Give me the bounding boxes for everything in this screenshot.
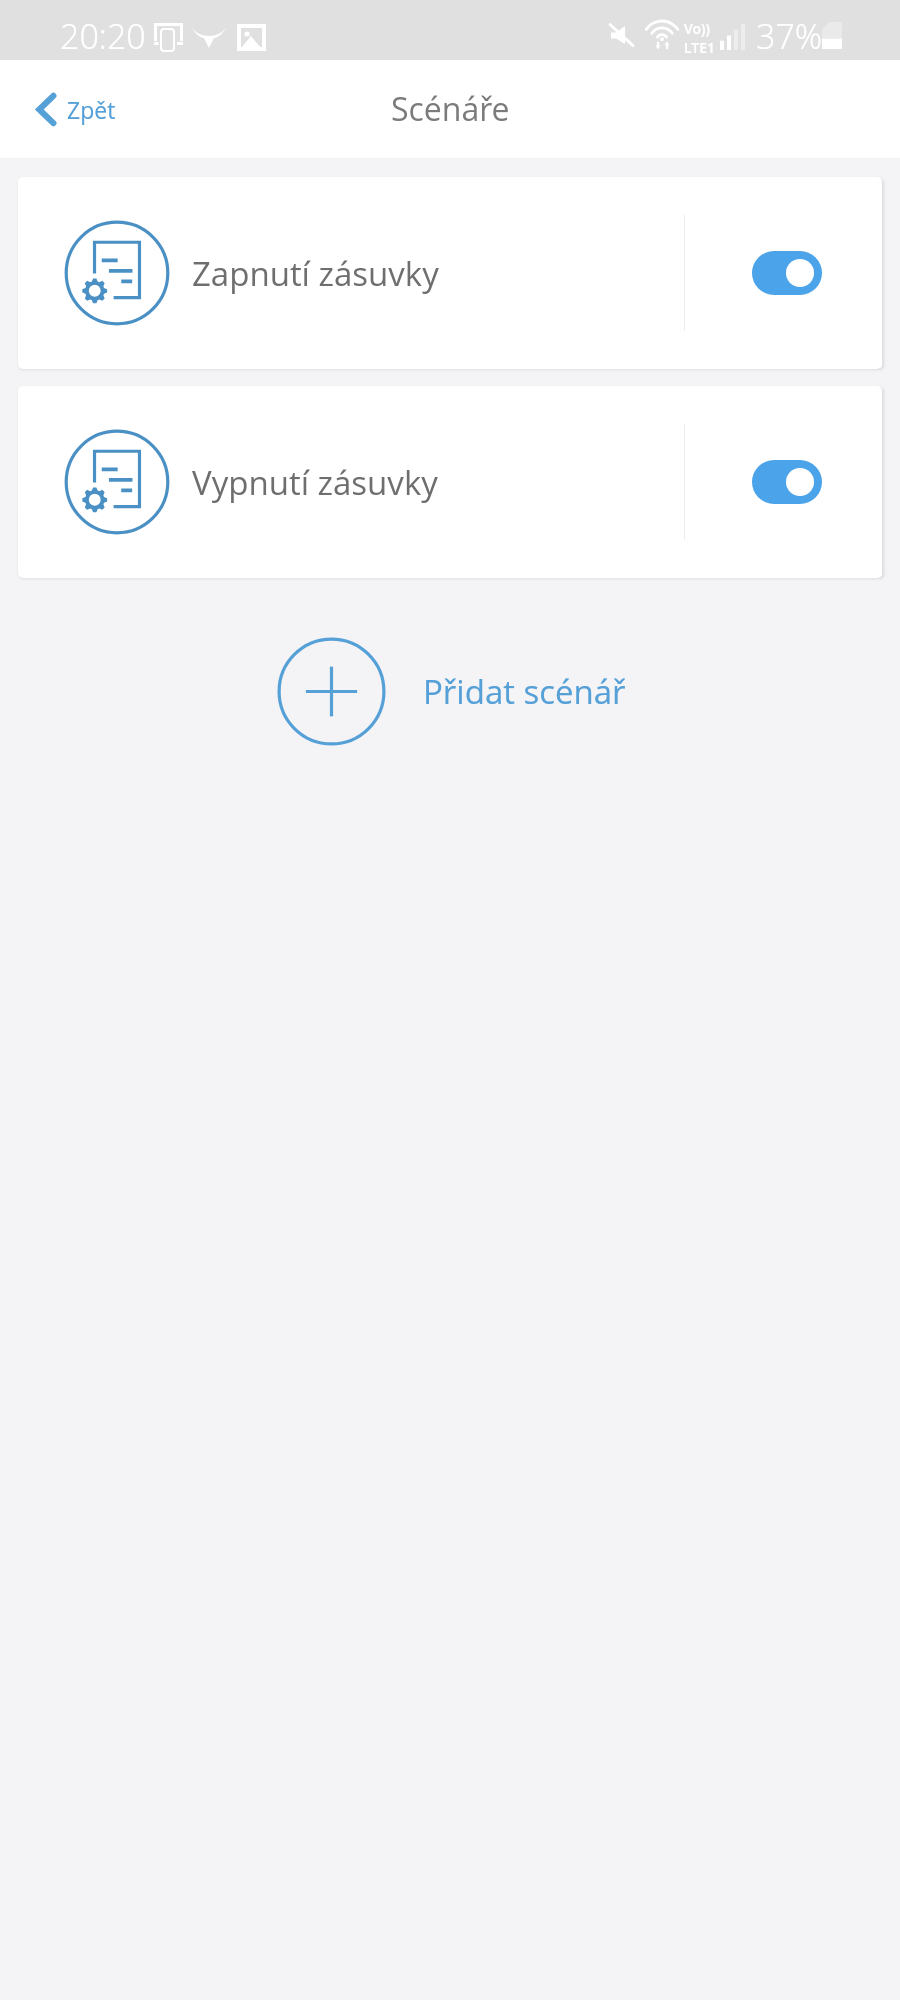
staticText: Zpět [67, 94, 116, 125]
button[interactable]: Přidat scénář [277, 637, 626, 746]
button[interactable]: Vypnutí zásuvky [18, 386, 882, 578]
button[interactable]: Zpět [0, 60, 146, 158]
staticText: Vo)) [684, 19, 710, 38]
staticText: Vypnutí zásuvky [192, 460, 438, 505]
button[interactable]: Zapnutí zásuvky [18, 177, 882, 369]
button[interactable]: Toggle Vypnutí zásuvky [685, 386, 882, 578]
staticText: Scénáře [391, 87, 510, 131]
staticText: Zapnutí zásuvky [192, 251, 439, 296]
staticText: LTE1 [684, 38, 716, 57]
staticText: 37% [756, 13, 823, 59]
staticText: Přidat scénář [423, 669, 626, 714]
staticText: 20:20 [60, 13, 146, 59]
button[interactable]: Toggle Zapnutí zásuvky [685, 177, 882, 369]
